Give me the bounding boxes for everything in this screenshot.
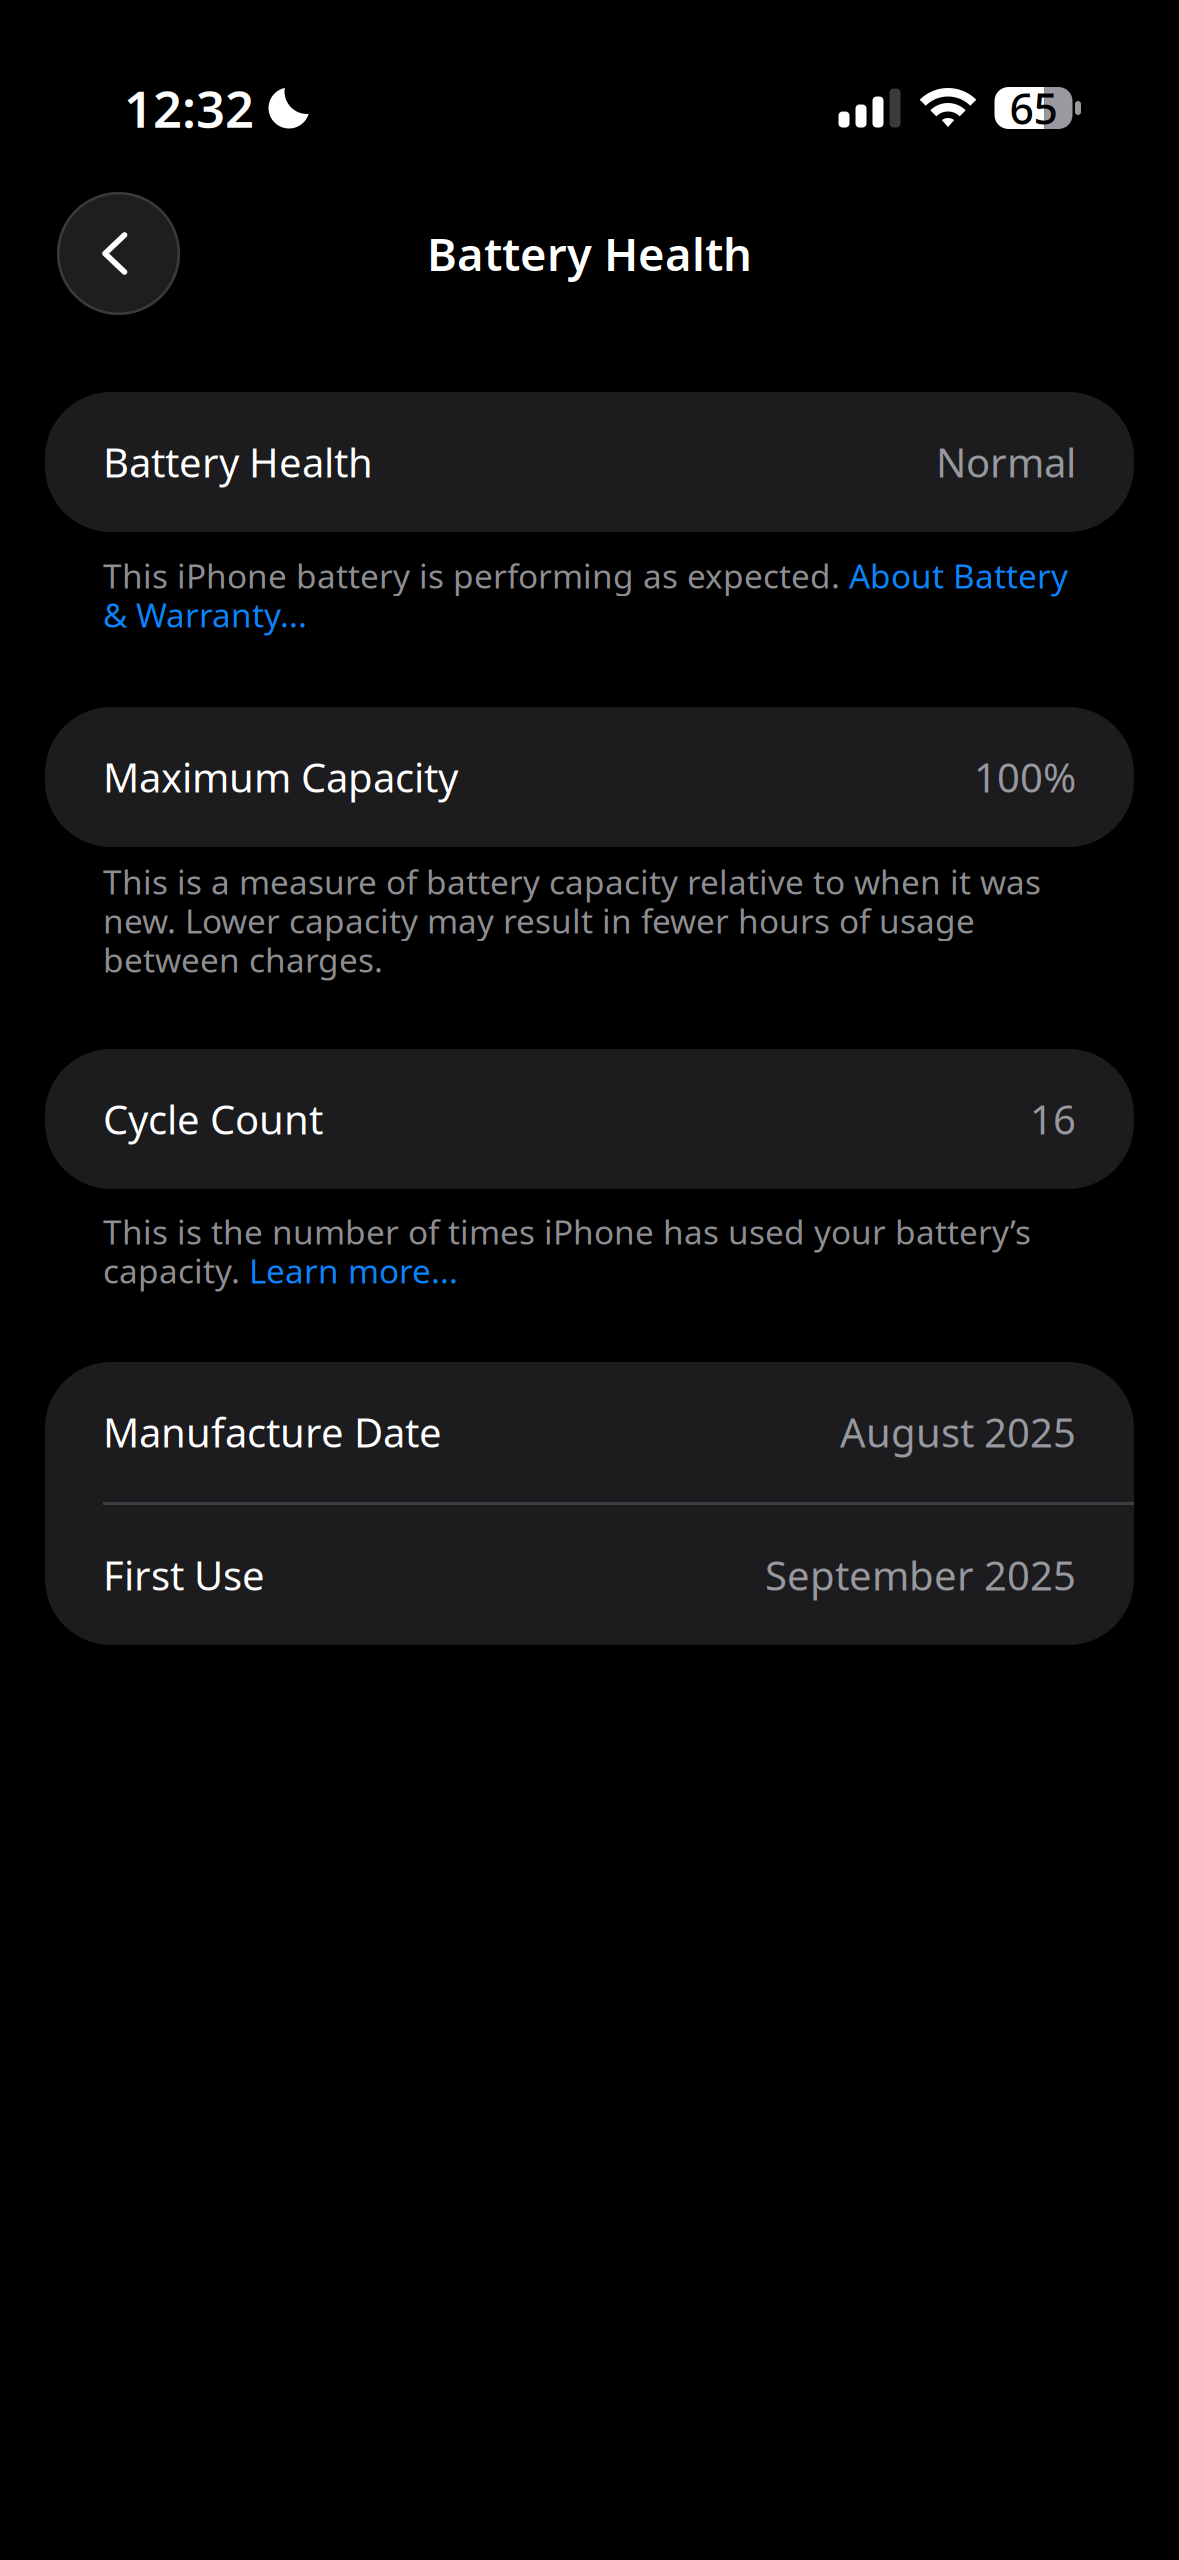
button[interactable]: Battery Health — [45, 392, 1134, 532]
staticText: between charges. — [103, 937, 383, 982]
staticText: 65 — [1009, 80, 1057, 136]
staticText: This is a measure of battery capacity re… — [103, 859, 1041, 904]
staticText: 12:32 — [124, 74, 254, 142]
staticText: August 2025 — [840, 1405, 1076, 1458]
staticText: Battery Health — [427, 223, 752, 284]
staticText: This iPhone battery is performing as exp… — [103, 553, 849, 598]
button[interactable]: First Use — [45, 1505, 1134, 1645]
button[interactable]: Cycle Count — [45, 1049, 1134, 1189]
staticText: Cycle Count — [103, 1092, 323, 1145]
button[interactable]: Manufacture Date — [45, 1362, 1134, 1502]
staticText: 100% — [974, 750, 1076, 803]
staticText: This is the number of times iPhone has u… — [103, 1209, 1031, 1254]
staticText: Manufacture Date — [103, 1405, 442, 1458]
staticText: September 2025 — [765, 1548, 1076, 1601]
staticText: Battery Health — [103, 435, 373, 488]
staticText: About Battery — [849, 553, 1068, 598]
staticText: 16 — [1030, 1092, 1076, 1145]
staticText: Maximum Capacity — [103, 750, 458, 803]
staticText: Normal — [936, 435, 1076, 488]
button[interactable]: Maximum Capacity — [45, 707, 1134, 847]
button[interactable]: Back — [57, 192, 180, 315]
staticText: First Use — [103, 1548, 265, 1601]
staticText: Learn more... — [249, 1248, 458, 1293]
staticText: & Warranty... — [103, 592, 307, 637]
staticText: new. Lower capacity may result in fewer … — [103, 898, 975, 943]
staticText: capacity. — [103, 1248, 249, 1293]
